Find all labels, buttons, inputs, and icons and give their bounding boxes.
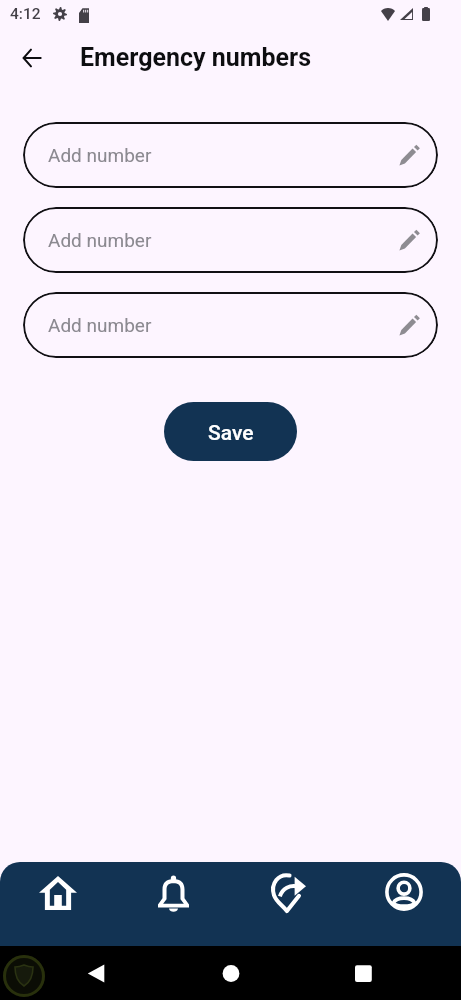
staticText: Save — [208, 421, 254, 446]
staticText: 4:12 — [10, 5, 41, 23]
staticText: Add number — [48, 314, 152, 336]
button[interactable]: Edit — [394, 140, 424, 170]
staticText: Add number — [48, 229, 152, 251]
button[interactable]: Edit — [394, 310, 424, 340]
button[interactable]: Back — [13, 38, 51, 76]
staticText: Add number — [48, 144, 152, 166]
button[interactable]: Save — [164, 402, 297, 461]
button[interactable]: Add number — [23, 122, 438, 188]
button[interactable]: Profile — [346, 862, 461, 946]
button[interactable]: Add number — [23, 207, 438, 273]
staticText: Emergency numbers — [80, 43, 311, 72]
button[interactable]: Edit — [394, 225, 424, 255]
button[interactable]: Share location — [231, 862, 346, 946]
button[interactable]: Add number — [23, 292, 438, 358]
button[interactable]: Home — [0, 862, 116, 946]
button[interactable]: Notifications — [116, 862, 231, 946]
